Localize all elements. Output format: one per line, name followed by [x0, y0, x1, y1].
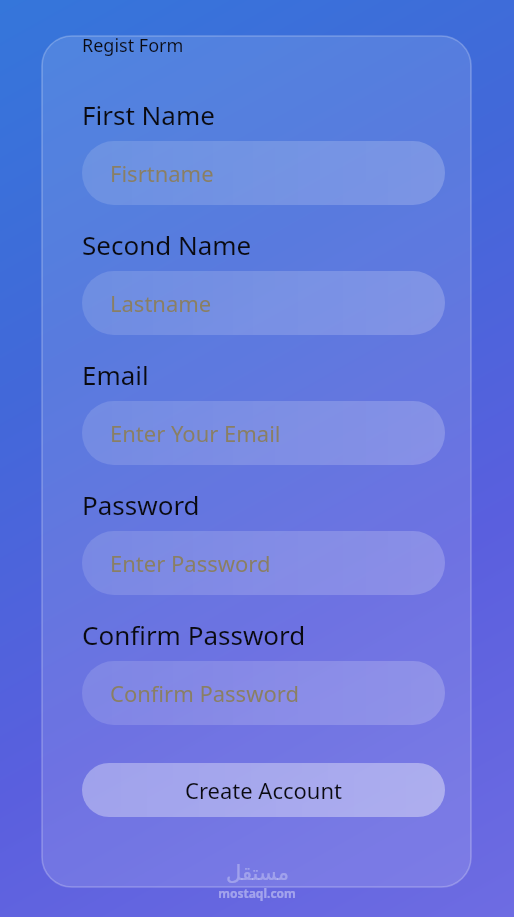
staticText: mostaql.com — [218, 885, 296, 901]
button[interactable]: Create Account — [82, 763, 445, 817]
button[interactable]: Fisrtname — [82, 141, 445, 205]
staticText: Lastname — [110, 288, 212, 318]
staticText: Confirm Password — [82, 617, 306, 652]
staticText: Confirm Password — [110, 678, 299, 708]
staticText: مستقل — [226, 861, 289, 885]
staticText: Create Account — [185, 775, 342, 805]
staticText: First Name — [82, 97, 215, 132]
staticText: Password — [82, 487, 200, 522]
staticText: Enter Password — [110, 548, 271, 578]
button[interactable]: Enter Your Email — [82, 401, 445, 465]
staticText: Enter Your Email — [110, 418, 281, 448]
staticText: Second Name — [82, 227, 252, 262]
button[interactable]: Confirm Password — [82, 661, 445, 725]
staticText: Email — [82, 357, 149, 392]
staticText: Fisrtname — [110, 158, 214, 188]
button[interactable]: Lastname — [82, 271, 445, 335]
button[interactable]: Enter Password — [82, 531, 445, 595]
button[interactable]: Regist Form — [82, 33, 184, 58]
